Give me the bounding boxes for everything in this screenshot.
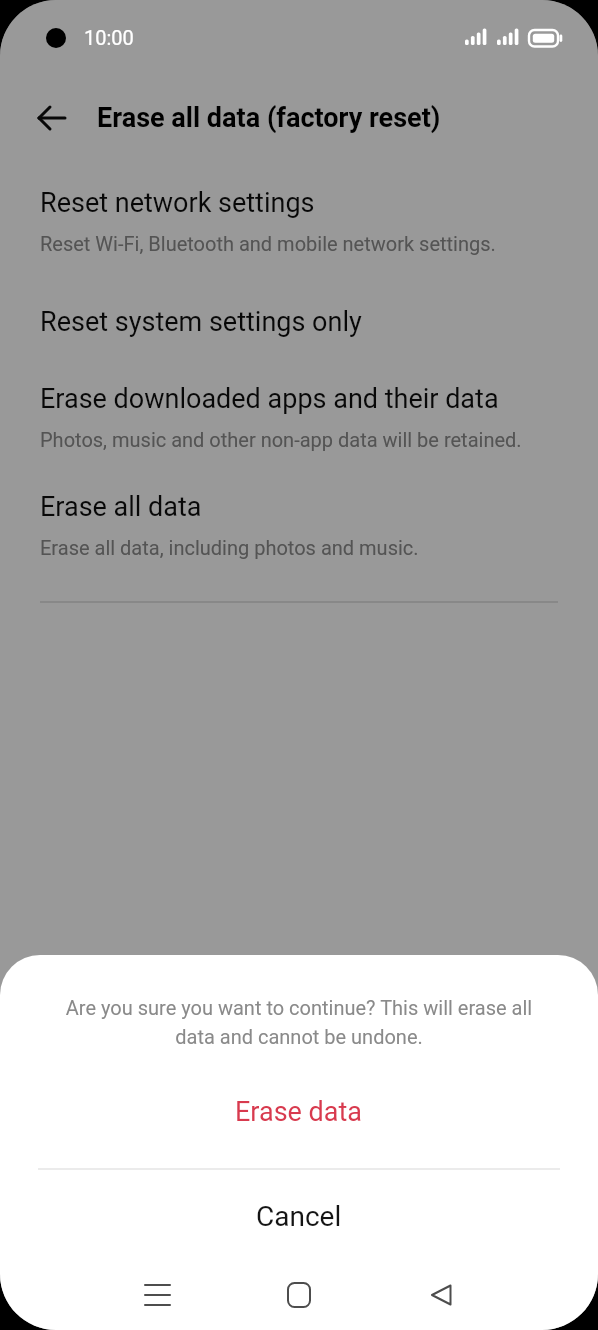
button[interactable] bbox=[133, 1271, 181, 1319]
button[interactable]: Reset system settings only bbox=[0, 284, 598, 360]
staticText: Photos, music and other non-app data wil… bbox=[40, 428, 522, 451]
staticText: Erase all data bbox=[40, 491, 202, 523]
button[interactable]: Cancel bbox=[0, 1188, 598, 1245]
staticText: Erase downloaded apps and their data bbox=[40, 383, 499, 415]
button[interactable]: Reset network settings bbox=[0, 165, 598, 277]
staticText: Reset network settings bbox=[40, 187, 315, 219]
button[interactable] bbox=[417, 1271, 465, 1319]
staticText: Reset system settings only bbox=[40, 306, 362, 338]
staticText: Erase all data (factory reset) bbox=[97, 102, 441, 134]
button[interactable]: Erase all data bbox=[0, 469, 598, 581]
button[interactable]: Erase data bbox=[0, 1084, 598, 1140]
staticText: 10:00 bbox=[84, 26, 134, 49]
staticText: Cancel bbox=[256, 1200, 342, 1233]
staticText: Are you sure you want to continue? This … bbox=[0, 996, 598, 1049]
staticText: Erase all data, including photos and mus… bbox=[40, 536, 419, 559]
button[interactable] bbox=[275, 1271, 323, 1319]
staticText: Reset Wi-Fi, Bluetooth and mobile networ… bbox=[40, 232, 496, 255]
button[interactable]: Erase downloaded apps and their data bbox=[0, 361, 598, 469]
staticText: Erase data bbox=[235, 1096, 363, 1128]
button[interactable] bbox=[0, 88, 66, 148]
